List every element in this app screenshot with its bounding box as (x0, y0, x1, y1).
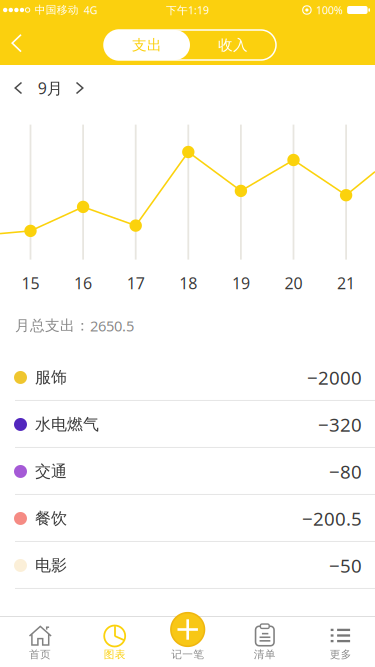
button[interactable]: Previous month (0, 65, 375, 106)
staticText: 水电燃气 (35, 415, 99, 434)
staticText: 19 (232, 272, 250, 294)
staticText: 交通 (35, 462, 67, 481)
staticText: 中国移动 (35, 3, 79, 16)
staticText: 下午1:19 (166, 3, 209, 17)
button[interactable]: Charts (77, 616, 152, 667)
staticText: 21 (337, 272, 355, 294)
button[interactable]: 服饰 (0, 354, 375, 401)
staticText: 清单 (254, 648, 276, 661)
staticText: 4G (84, 3, 98, 17)
staticText: 18 (179, 272, 197, 294)
button[interactable]: 水电燃气 (0, 401, 375, 448)
staticText: 服饰 (35, 368, 67, 387)
staticText: 20 (284, 272, 302, 294)
staticText: 电影 (35, 556, 67, 575)
button[interactable]: 支出 (104, 30, 190, 60)
button[interactable]: More (303, 616, 375, 667)
staticText: 餐饮 (35, 509, 67, 528)
button[interactable]: Home (2, 616, 77, 667)
button[interactable]: 交通 (0, 448, 375, 495)
staticText: 2650.5 (90, 316, 134, 335)
button[interactable]: Next month (0, 65, 375, 106)
staticText: 记一笔 (171, 648, 204, 661)
staticText: −50 (329, 553, 362, 578)
staticText: 首页 (29, 648, 51, 661)
button[interactable]: 电影 (0, 542, 375, 589)
staticText: −320 (318, 412, 362, 437)
staticText: 100% (316, 3, 343, 17)
button[interactable]: 餐饮 (0, 495, 375, 542)
staticText: 16 (74, 272, 92, 294)
staticText: 15 (21, 272, 39, 294)
button[interactable]: Back (0, 0, 375, 65)
staticText: 收入 (218, 36, 248, 54)
staticText: −200.5 (302, 506, 362, 531)
button[interactable]: Add record (150, 616, 225, 667)
button[interactable]: Lists (227, 616, 302, 667)
staticText: 9月 (38, 77, 63, 99)
staticText: −80 (329, 459, 362, 484)
staticText: 17 (127, 272, 145, 294)
staticText: 图表 (104, 648, 126, 661)
staticText: 更多 (330, 648, 352, 661)
staticText: 月总支出： (15, 317, 90, 335)
staticText: 支出 (132, 36, 162, 54)
staticText: −2000 (307, 365, 362, 390)
button[interactable]: 收入 (190, 30, 276, 60)
